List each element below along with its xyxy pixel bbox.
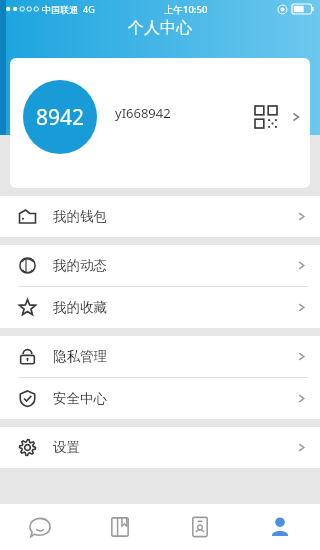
staticText: 8942 bbox=[36, 103, 85, 132]
button[interactable]: 我的钱包 bbox=[0, 196, 320, 237]
button[interactable]: 书籍 bbox=[80, 504, 160, 550]
staticText: 4G bbox=[83, 3, 95, 15]
staticText: 我的动态 bbox=[53, 257, 107, 274]
button[interactable]: 安全中心 bbox=[0, 378, 320, 419]
staticText: 我的钱包 bbox=[53, 208, 107, 225]
staticText: 中国联通 bbox=[42, 4, 78, 15]
button[interactable]: 设置 bbox=[0, 427, 320, 468]
staticText: 安全中心 bbox=[53, 390, 107, 407]
staticText: 隐私管理 bbox=[53, 348, 107, 365]
button[interactable]: 消息 bbox=[0, 504, 80, 550]
staticText: 上午10:50 bbox=[164, 3, 208, 16]
button[interactable]: 我的收藏 bbox=[0, 287, 320, 328]
staticText: yI668942 bbox=[115, 104, 171, 122]
button[interactable]: 隐私管理 bbox=[0, 336, 320, 377]
button[interactable]: 名片 bbox=[160, 504, 240, 550]
button[interactable]: 二维码 bbox=[255, 106, 277, 128]
button[interactable]: 8942 bbox=[10, 58, 310, 188]
staticText: 个人中心 bbox=[0, 18, 320, 38]
button[interactable]: 我的 bbox=[240, 504, 320, 550]
staticText: 我的收藏 bbox=[53, 299, 107, 316]
staticText: 设置 bbox=[53, 439, 80, 456]
button[interactable]: 我的动态 bbox=[0, 245, 320, 286]
